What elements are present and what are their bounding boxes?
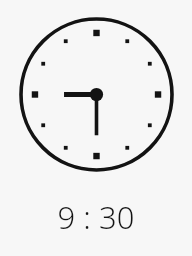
button[interactable]: Analog clock showing nine thirty bbox=[19, 17, 174, 172]
button[interactable]: 9 : 30 bbox=[0, 196, 192, 238]
staticText: 9 : 30 bbox=[0, 196, 192, 238]
